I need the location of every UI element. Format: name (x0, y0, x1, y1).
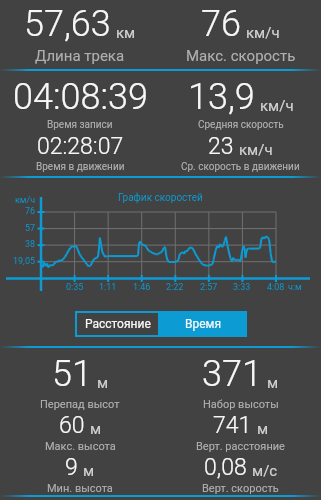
staticText: 13,9 (188, 76, 255, 118)
staticText: 0,08 (204, 454, 247, 481)
staticText: График скоростей (118, 192, 203, 204)
staticText: Средняя скорость (198, 119, 284, 131)
staticText: 38 (25, 239, 36, 250)
staticText: м/с (252, 462, 278, 480)
staticText: км/ч (239, 141, 273, 159)
staticText: 02:28:07 (37, 133, 124, 160)
staticText: м (267, 374, 279, 392)
staticText: 76 (25, 206, 36, 217)
staticText: м (97, 374, 109, 392)
staticText: 3:33 (233, 282, 251, 293)
staticText: Ср. скорость в движении (181, 161, 300, 173)
button[interactable]: Время (160, 311, 247, 337)
staticText: ч:м (288, 282, 302, 293)
staticText: Верт. скорость (202, 482, 279, 495)
staticText: Время записи (47, 119, 113, 131)
staticText: 57 (25, 223, 36, 234)
staticText: 0:35 (66, 282, 84, 293)
staticText: 2:57 (200, 282, 218, 293)
staticText: 57,63 (24, 3, 111, 45)
staticText: Расстояние (85, 317, 151, 331)
staticText: 23 (208, 133, 234, 160)
staticText: 1:11 (99, 282, 117, 293)
staticText: км/ч (15, 195, 36, 206)
staticText: 4:08 (267, 282, 285, 293)
staticText: м (90, 420, 102, 438)
staticText: 2:22 (166, 282, 184, 293)
staticText: км (116, 24, 136, 42)
staticText: Время в движении (36, 161, 125, 173)
button[interactable]: Расстояние (75, 311, 160, 337)
staticText: Время (185, 317, 222, 331)
staticText: Верт. расстояние (196, 440, 285, 453)
staticText: м (83, 462, 95, 480)
staticText: Макс. скорость (186, 47, 296, 65)
staticText: Мин. высота (47, 482, 113, 495)
staticText: Перепад высот (40, 398, 120, 411)
staticText: 371 (202, 353, 262, 395)
staticText: 04:08:39 (13, 76, 148, 118)
staticText: км/ч (246, 24, 280, 42)
staticText: 76 (201, 3, 241, 45)
staticText: Макс. высота (45, 440, 116, 453)
staticText: 1:46 (133, 282, 151, 293)
staticText: 19,05 (13, 256, 36, 267)
staticText: Набор высоты (203, 398, 279, 411)
staticText: 741 (213, 412, 252, 439)
staticText: Длина трека (35, 47, 125, 65)
staticText: м (257, 420, 269, 438)
staticText: 51 (52, 353, 92, 395)
staticText: км/ч (260, 97, 294, 115)
staticText: 60 (59, 412, 85, 439)
staticText: 9 (65, 454, 78, 481)
